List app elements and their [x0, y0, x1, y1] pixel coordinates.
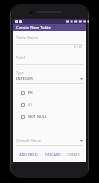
button[interactable]: AI	[13, 102, 86, 107]
staticText: 0 / 80	[74, 45, 83, 49]
button[interactable]: CREATE	[65, 150, 82, 159]
staticText: Table Name	[16, 35, 39, 40]
staticText: ADD FIELD	[19, 152, 38, 157]
staticText: CREATE	[67, 152, 80, 157]
staticText: Field	[16, 55, 25, 60]
button[interactable]: DISCARD	[43, 150, 63, 159]
staticText: Create New Table	[16, 25, 51, 31]
button[interactable]: ADD FIELD	[17, 150, 40, 159]
button[interactable]: Table Name input	[13, 35, 86, 49]
button[interactable]: INTEGER selector	[13, 70, 86, 84]
staticText: NOT NULL	[28, 114, 47, 119]
button[interactable]: PK	[13, 90, 86, 95]
button[interactable]: Default Value selector	[13, 138, 86, 146]
staticText: INTEGER	[16, 76, 33, 81]
staticText: AI	[28, 102, 32, 107]
staticText: Default Value	[16, 138, 42, 143]
button[interactable]: Field input	[13, 55, 86, 65]
staticText: PK	[28, 90, 33, 95]
button[interactable]: NOT NULL	[13, 114, 86, 119]
staticText: DISCARD	[45, 152, 61, 157]
staticText: Type	[16, 70, 24, 75]
